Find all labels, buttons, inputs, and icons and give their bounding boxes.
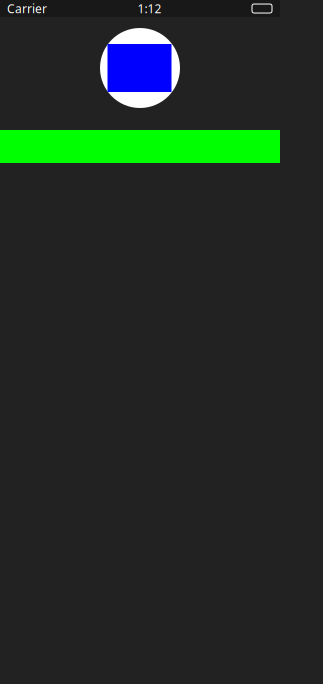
staticText: Carrier xyxy=(7,0,47,16)
staticText: 1:12 xyxy=(137,0,161,16)
